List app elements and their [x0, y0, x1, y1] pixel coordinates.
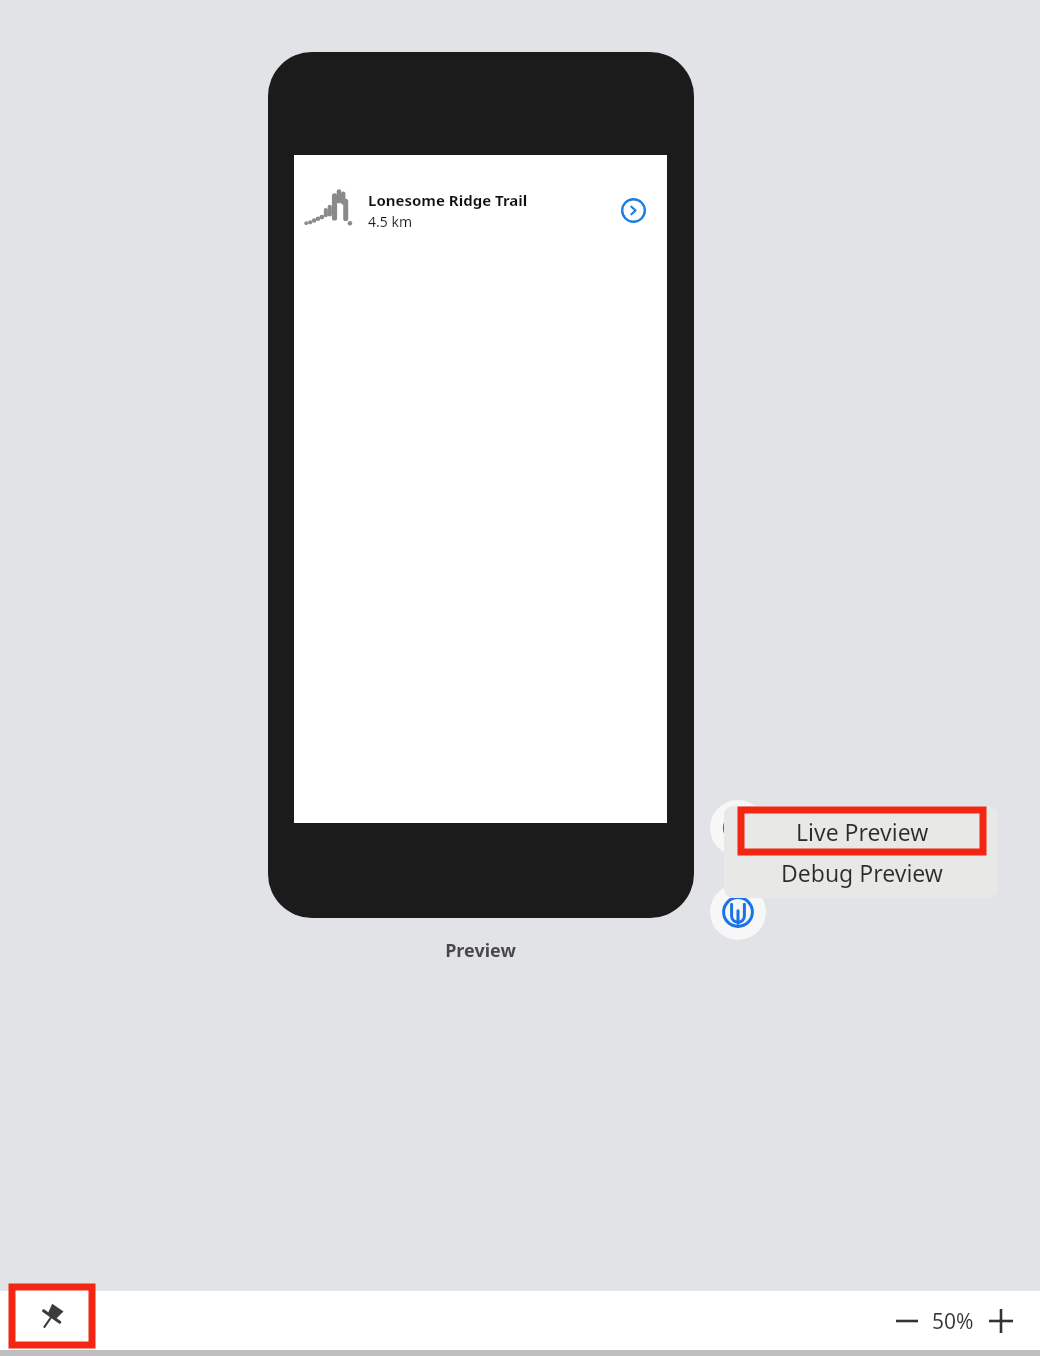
staticText: Lonesome Ridge Trail — [368, 190, 528, 210]
button[interactable]: Live Preview — [741, 810, 983, 852]
button[interactable]: Zoom out — [890, 1304, 924, 1338]
button[interactable]: Open trail details — [619, 196, 647, 224]
staticText: Live Preview — [796, 816, 929, 847]
button[interactable]: Debug Preview — [741, 852, 983, 892]
button[interactable]: Lonesome Ridge Trail — [294, 188, 667, 232]
staticText: 4.5 km — [368, 212, 412, 231]
button[interactable]: Zoom in — [984, 1304, 1018, 1338]
button[interactable]: Pin preview — [12, 1287, 92, 1345]
button[interactable]: Live Preview — [710, 800, 766, 856]
staticText: Debug Preview — [781, 857, 943, 888]
staticText: 50% — [932, 1307, 974, 1336]
staticText: Preview — [445, 938, 516, 963]
button[interactable]: Magnet, attach preview — [710, 884, 766, 940]
